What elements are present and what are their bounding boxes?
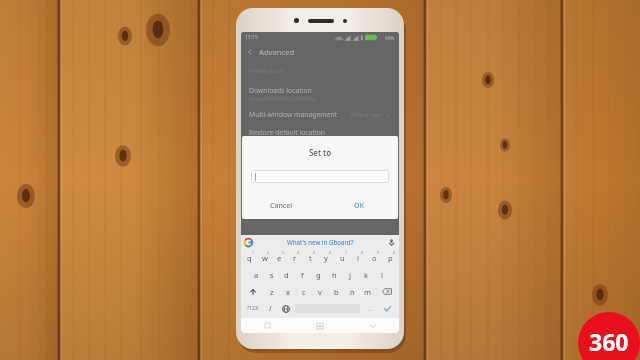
button[interactable]: Cancel bbox=[242, 197, 320, 215]
button[interactable]: ?123 bbox=[242, 300, 263, 317]
button[interactable]: 9 bbox=[366, 249, 382, 266]
staticText: What's new in Gboard? bbox=[287, 238, 354, 246]
button[interactable]: / bbox=[263, 300, 278, 317]
staticText: q bbox=[247, 253, 252, 263]
button[interactable]: Backspace bbox=[376, 283, 398, 300]
button[interactable]: Restore default location bbox=[241, 125, 399, 146]
staticText: 9 bbox=[377, 250, 380, 255]
button[interactable]: 0 bbox=[382, 249, 398, 266]
button[interactable]: 1 bbox=[242, 249, 257, 266]
staticText: n bbox=[350, 287, 355, 297]
button[interactable]: h bbox=[326, 266, 342, 283]
staticText: Downloads location bbox=[249, 86, 312, 95]
button[interactable]: 7 bbox=[334, 249, 350, 266]
button[interactable]: b bbox=[328, 283, 344, 300]
staticText: f bbox=[301, 270, 304, 280]
button[interactable]: 8 bbox=[350, 249, 366, 266]
staticText: / bbox=[269, 304, 272, 314]
staticText: d bbox=[284, 270, 289, 280]
staticText: 46% bbox=[385, 35, 395, 41]
button[interactable]: x bbox=[280, 283, 296, 300]
staticText: 8 bbox=[361, 250, 364, 255]
button[interactable]: Gadgets 360 logo bbox=[578, 312, 640, 360]
staticText: 5 bbox=[313, 250, 316, 255]
button[interactable]: f bbox=[294, 266, 310, 283]
button[interactable]: d bbox=[279, 266, 294, 283]
button[interactable]: Downloads location bbox=[241, 83, 399, 104]
button[interactable]: Recents bbox=[241, 318, 293, 333]
staticText: Multi-window management bbox=[249, 110, 338, 119]
button[interactable] bbox=[251, 170, 389, 183]
staticText: s bbox=[270, 270, 274, 280]
staticText: p bbox=[388, 253, 393, 263]
staticText: a bbox=[254, 270, 259, 280]
staticText: m bbox=[364, 287, 372, 297]
button[interactable]: 2 bbox=[257, 249, 272, 266]
button[interactable]: l bbox=[374, 266, 390, 283]
staticText: Private space bbox=[249, 67, 284, 74]
staticText: c bbox=[302, 287, 306, 297]
staticText: w bbox=[262, 253, 268, 263]
staticText: 3 bbox=[282, 250, 285, 255]
button[interactable]: . bbox=[362, 300, 377, 317]
staticText: t bbox=[309, 253, 312, 263]
button[interactable]: 5 bbox=[302, 249, 318, 266]
staticText: k bbox=[364, 270, 369, 280]
button[interactable]: j bbox=[342, 266, 358, 283]
staticText: e bbox=[277, 253, 282, 263]
staticText: r bbox=[293, 253, 297, 263]
button[interactable]: Enter bbox=[377, 300, 398, 317]
staticText: 1 bbox=[252, 250, 255, 255]
button[interactable]: OK bbox=[320, 197, 398, 215]
staticText: 13:15 bbox=[245, 34, 258, 41]
button[interactable]: g bbox=[310, 266, 326, 283]
button[interactable]: Google bbox=[244, 238, 253, 247]
staticText: Set to bbox=[242, 147, 398, 158]
staticText: Restore default location bbox=[249, 128, 325, 137]
button[interactable]: Back bbox=[245, 47, 255, 57]
staticText: Default view bbox=[351, 111, 382, 118]
button[interactable]: What's new in Gboard? bbox=[253, 235, 387, 249]
staticText: x bbox=[286, 287, 290, 297]
button[interactable]: 4 bbox=[287, 249, 302, 266]
staticText: g bbox=[316, 270, 321, 280]
staticText: ?123 bbox=[247, 305, 258, 312]
staticText: b bbox=[334, 287, 339, 297]
staticText: 7 bbox=[345, 250, 348, 255]
button[interactable]: Shift bbox=[242, 283, 264, 300]
button[interactable]: 6 bbox=[318, 249, 334, 266]
button[interactable]: m bbox=[360, 283, 376, 300]
button[interactable]: Change language bbox=[278, 300, 293, 317]
staticText: Cancel bbox=[270, 201, 293, 211]
button[interactable]: Multi-window management bbox=[241, 104, 399, 125]
staticText: 6 bbox=[329, 250, 332, 255]
staticText: OK bbox=[354, 201, 364, 211]
button[interactable]: k bbox=[358, 266, 374, 283]
button[interactable]: a bbox=[249, 266, 264, 283]
staticText: z bbox=[270, 287, 274, 297]
staticText: j bbox=[349, 270, 351, 280]
staticText: 0 bbox=[393, 250, 396, 255]
button[interactable]: Back bbox=[346, 318, 399, 333]
staticText: 360 bbox=[589, 326, 629, 357]
staticText: h bbox=[332, 270, 337, 280]
staticText: 2 bbox=[267, 250, 270, 255]
button[interactable]: z bbox=[264, 283, 280, 300]
button[interactable]: Home bbox=[293, 318, 346, 333]
button[interactable]: s bbox=[264, 266, 279, 283]
button[interactable]: v bbox=[312, 283, 328, 300]
button[interactable]: Voice input bbox=[387, 238, 396, 247]
staticText: Advanced bbox=[259, 47, 295, 57]
staticText: storage/emulated/0/Download bbox=[249, 96, 316, 102]
staticText: y bbox=[324, 253, 328, 263]
staticText: l bbox=[381, 270, 383, 280]
button[interactable]: n bbox=[344, 283, 360, 300]
button[interactable]: c bbox=[296, 283, 312, 300]
staticText: i bbox=[357, 253, 359, 263]
button[interactable]: 3 bbox=[272, 249, 287, 266]
staticText: v bbox=[318, 287, 322, 297]
staticText: o bbox=[372, 253, 377, 263]
staticText: . bbox=[369, 304, 371, 314]
